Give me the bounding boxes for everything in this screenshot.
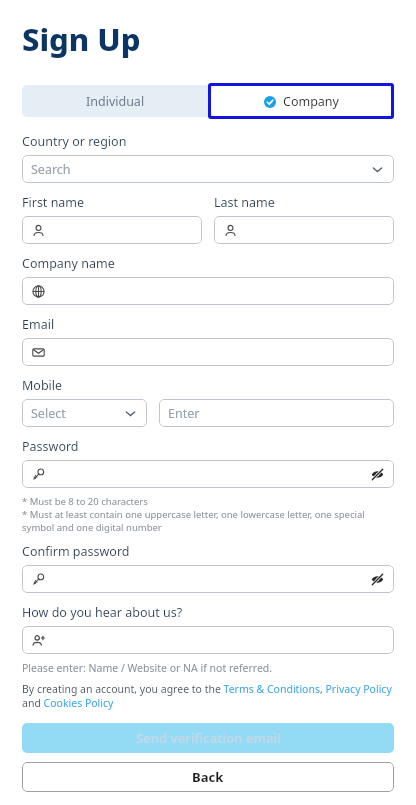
staticText: Individual	[86, 93, 145, 110]
staticText: Company name	[22, 255, 115, 272]
staticText: Enter	[168, 405, 200, 422]
other: Confirm password	[31, 572, 45, 586]
staticText: Country or region	[22, 133, 127, 150]
button[interactable]: Referral source	[22, 626, 394, 654]
staticText: Send verification email	[136, 729, 281, 747]
button[interactable]: Select	[22, 399, 147, 427]
button[interactable]: Enter	[159, 399, 394, 427]
staticText: Last name	[214, 194, 275, 211]
staticText: Select	[31, 405, 66, 422]
staticText: Please enter: Name / Website or NA if no…	[22, 661, 273, 675]
staticText: Email	[22, 316, 55, 333]
other: Password	[31, 467, 45, 481]
other: Company name	[31, 284, 45, 298]
staticText: Confirm password	[22, 543, 130, 560]
staticText: Password	[22, 438, 79, 455]
button[interactable]: Show confirm password	[369, 571, 385, 587]
button[interactable]: Back	[22, 762, 394, 792]
staticText: How do you hear about us?	[22, 604, 183, 621]
staticText: Sign Up	[22, 18, 141, 60]
button[interactable]: Confirm password	[22, 565, 394, 593]
staticText: * Must at least contain one uppercase le…	[22, 508, 394, 534]
other: Referral source	[31, 633, 45, 647]
staticText: Mobile	[22, 377, 63, 394]
button[interactable]: Open country list	[369, 161, 385, 177]
button[interactable]: Password	[22, 460, 394, 488]
button[interactable]: Email	[22, 338, 394, 366]
staticText: First name	[22, 194, 85, 211]
button[interactable]: Last name	[214, 216, 394, 244]
staticText: Search	[31, 161, 71, 178]
button[interactable]: Show password	[369, 466, 385, 482]
button[interactable]: Send verification email	[22, 723, 394, 753]
button[interactable]: Company	[211, 86, 391, 116]
other: First name	[31, 223, 45, 237]
button[interactable]: First name	[22, 216, 202, 244]
staticText: * Must be 8 to 20 characters	[22, 495, 148, 508]
staticText: Company	[283, 93, 339, 110]
button[interactable]: Select country code	[122, 405, 138, 421]
button[interactable]: Search	[22, 155, 394, 183]
button[interactable]: Company name	[22, 277, 394, 305]
other: Email	[31, 345, 45, 359]
staticText: Back	[192, 768, 224, 786]
other: Last name	[223, 223, 237, 237]
button[interactable]: Individual	[22, 83, 208, 119]
button[interactable]: By creating an account, you agree to the…	[22, 682, 394, 710]
